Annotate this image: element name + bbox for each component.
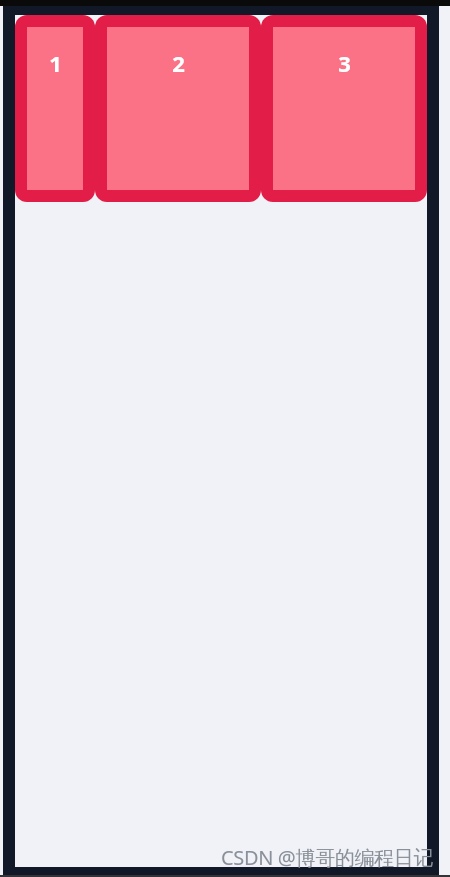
button[interactable]: 2 xyxy=(95,15,261,202)
staticText: 1 xyxy=(49,48,62,78)
staticText: 2 xyxy=(172,48,185,78)
button[interactable]: 1 xyxy=(15,15,95,202)
staticText: 3 xyxy=(338,48,351,78)
staticText: CSDN @博哥的编程日记 xyxy=(221,844,434,871)
button[interactable]: 3 xyxy=(261,15,427,202)
other: Content area xyxy=(15,202,427,867)
